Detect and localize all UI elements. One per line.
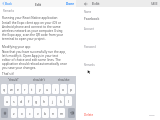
- staticText: “should”: [8, 78, 19, 82]
- staticText: Edit: [35, 2, 42, 6]
- staticText: Remarks: [3, 9, 15, 13]
- button[interactable]: Done: [64, 0, 76, 7]
- staticText: z: [13, 111, 15, 116]
- button[interactable]: m: [58, 108, 65, 118]
- button[interactable]: n: [50, 108, 57, 118]
- button[interactable]: Delete: [68, 108, 75, 118]
- button[interactable]: j: [49, 96, 56, 106]
- staticText: t: [31, 87, 33, 92]
- staticText: h: [43, 99, 46, 104]
- button[interactable]: r: [22, 84, 28, 94]
- button[interactable]: z: [11, 108, 17, 118]
- staticText: Name: [84, 10, 92, 14]
- staticText: b: [44, 111, 47, 116]
- button[interactable]: Back: [83, 1, 88, 6]
- staticText: Save: [149, 113, 155, 116]
- staticText: Remarks: [84, 63, 95, 67]
- button[interactable]: a: [4, 96, 10, 106]
- staticText: Account: [84, 27, 94, 31]
- button[interactable]: “should”: [0, 76, 26, 84]
- staticText: e: [17, 87, 19, 92]
- staticText: SAVE: [151, 2, 158, 6]
- button[interactable]: h: [41, 96, 48, 106]
- button[interactable]: w: [8, 84, 14, 94]
- button[interactable]: s: [11, 96, 17, 106]
- button[interactable]: Back: [0, 0, 14, 7]
- button[interactable]: k: [57, 96, 64, 106]
- staticText: w: [10, 87, 13, 92]
- staticText: Password: [84, 45, 96, 49]
- button[interactable]: g: [33, 96, 40, 106]
- staticText: n: [52, 111, 55, 116]
- staticText: x: [21, 111, 23, 116]
- button[interactable]: SAVE: [150, 2, 159, 6]
- staticText: v: [37, 111, 39, 116]
- staticText: That's it!: [2, 72, 15, 76]
- staticText: r: [24, 87, 26, 92]
- staticText: f: [28, 99, 30, 104]
- staticText: Modifying your app Now that you have suc…: [2, 45, 68, 69]
- button[interactable]: b: [42, 108, 49, 118]
- staticText: c: [29, 111, 31, 116]
- button[interactable]: c: [26, 108, 33, 118]
- staticText: Edit: [92, 1, 100, 7]
- button[interactable]: d: [18, 96, 24, 106]
- staticText: o: [62, 87, 65, 92]
- button[interactable]: l: [65, 96, 72, 106]
- staticText: s: [13, 99, 15, 104]
- staticText: Back: [5, 2, 12, 6]
- button[interactable]: Delete: [84, 109, 155, 120]
- staticText: l: [68, 99, 69, 104]
- staticText: d: [20, 99, 23, 104]
- button[interactable]: o: [60, 84, 67, 94]
- staticText: Facebook: [84, 16, 100, 21]
- button[interactable]: y: [36, 84, 43, 94]
- staticText: Delete: [84, 113, 94, 117]
- staticText: q: [3, 87, 6, 92]
- button[interactable]: u: [44, 84, 51, 94]
- staticText: i: [55, 87, 56, 92]
- button[interactable]: p: [68, 84, 75, 94]
- staticText: shouldn’t: [33, 78, 45, 82]
- staticText: shouldve: [58, 78, 70, 82]
- staticText: p: [70, 87, 73, 92]
- button[interactable]: Shift: [1, 108, 8, 118]
- button[interactable]: shouldve: [51, 76, 76, 84]
- staticText: g: [35, 99, 38, 104]
- staticText: a: [6, 99, 8, 104]
- button[interactable]: t: [29, 84, 35, 94]
- button[interactable]: x: [18, 108, 25, 118]
- button[interactable]: i: [52, 84, 59, 94]
- button[interactable]: e: [15, 84, 21, 94]
- staticText: Done: [66, 2, 74, 6]
- button[interactable]: q: [1, 84, 7, 94]
- button[interactable]: f: [25, 96, 32, 106]
- staticText: j: [52, 99, 53, 104]
- button[interactable]: shouldn’t: [26, 76, 51, 84]
- button[interactable]: v: [34, 108, 41, 118]
- staticText: Running your React Native application In…: [2, 16, 64, 40]
- staticText: k: [60, 99, 62, 104]
- staticText: y: [39, 87, 41, 92]
- staticText: u: [46, 87, 49, 92]
- staticText: m: [60, 111, 64, 116]
